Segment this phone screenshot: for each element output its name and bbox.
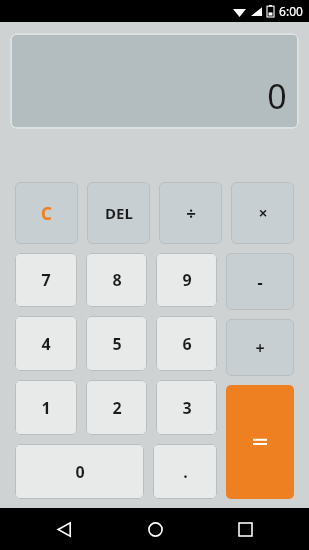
staticText: 4 xyxy=(41,333,51,355)
staticText: DEL xyxy=(105,203,133,223)
button[interactable]: Back xyxy=(38,508,90,550)
button[interactable]: Equals xyxy=(226,385,294,499)
button[interactable]: - xyxy=(226,253,294,310)
staticText: 2 xyxy=(112,397,122,419)
staticText: 3 xyxy=(182,397,192,419)
button[interactable]: 0 xyxy=(15,444,144,499)
staticText: + xyxy=(255,337,265,359)
staticText: 0 xyxy=(75,461,85,483)
button[interactable]: + xyxy=(226,319,294,376)
button[interactable]: 0 xyxy=(10,33,299,129)
button[interactable]: 6 xyxy=(156,316,217,371)
staticText: 8 xyxy=(112,269,122,291)
staticText: 1 xyxy=(41,397,51,419)
staticText: 7 xyxy=(41,269,51,291)
button[interactable]: Recent apps xyxy=(219,508,271,550)
staticText: . xyxy=(183,461,188,483)
staticText: ÷ xyxy=(186,202,196,225)
button[interactable]: 3 xyxy=(156,380,217,435)
button[interactable]: C xyxy=(15,182,78,244)
button[interactable]: ÷ xyxy=(159,182,222,244)
button[interactable]: DEL xyxy=(87,182,150,244)
staticText: × xyxy=(258,202,268,224)
button[interactable]: 4 xyxy=(15,316,77,371)
button[interactable]: Home xyxy=(129,508,181,550)
button[interactable]: × xyxy=(231,182,294,244)
staticText: - xyxy=(257,271,263,293)
button[interactable]: 9 xyxy=(156,253,217,307)
staticText: 5 xyxy=(112,333,122,355)
staticText: 0 xyxy=(267,73,287,119)
button[interactable]: 8 xyxy=(86,253,147,307)
button[interactable]: 1 xyxy=(15,380,77,435)
staticText: C xyxy=(41,202,52,225)
staticText: 6 xyxy=(182,333,192,355)
staticText: 9 xyxy=(182,269,192,291)
button[interactable]: . xyxy=(153,444,217,499)
staticText: 6:00 xyxy=(279,3,303,19)
button[interactable]: 2 xyxy=(86,380,147,435)
button[interactable]: 5 xyxy=(86,316,147,371)
button[interactable]: 7 xyxy=(15,253,77,307)
